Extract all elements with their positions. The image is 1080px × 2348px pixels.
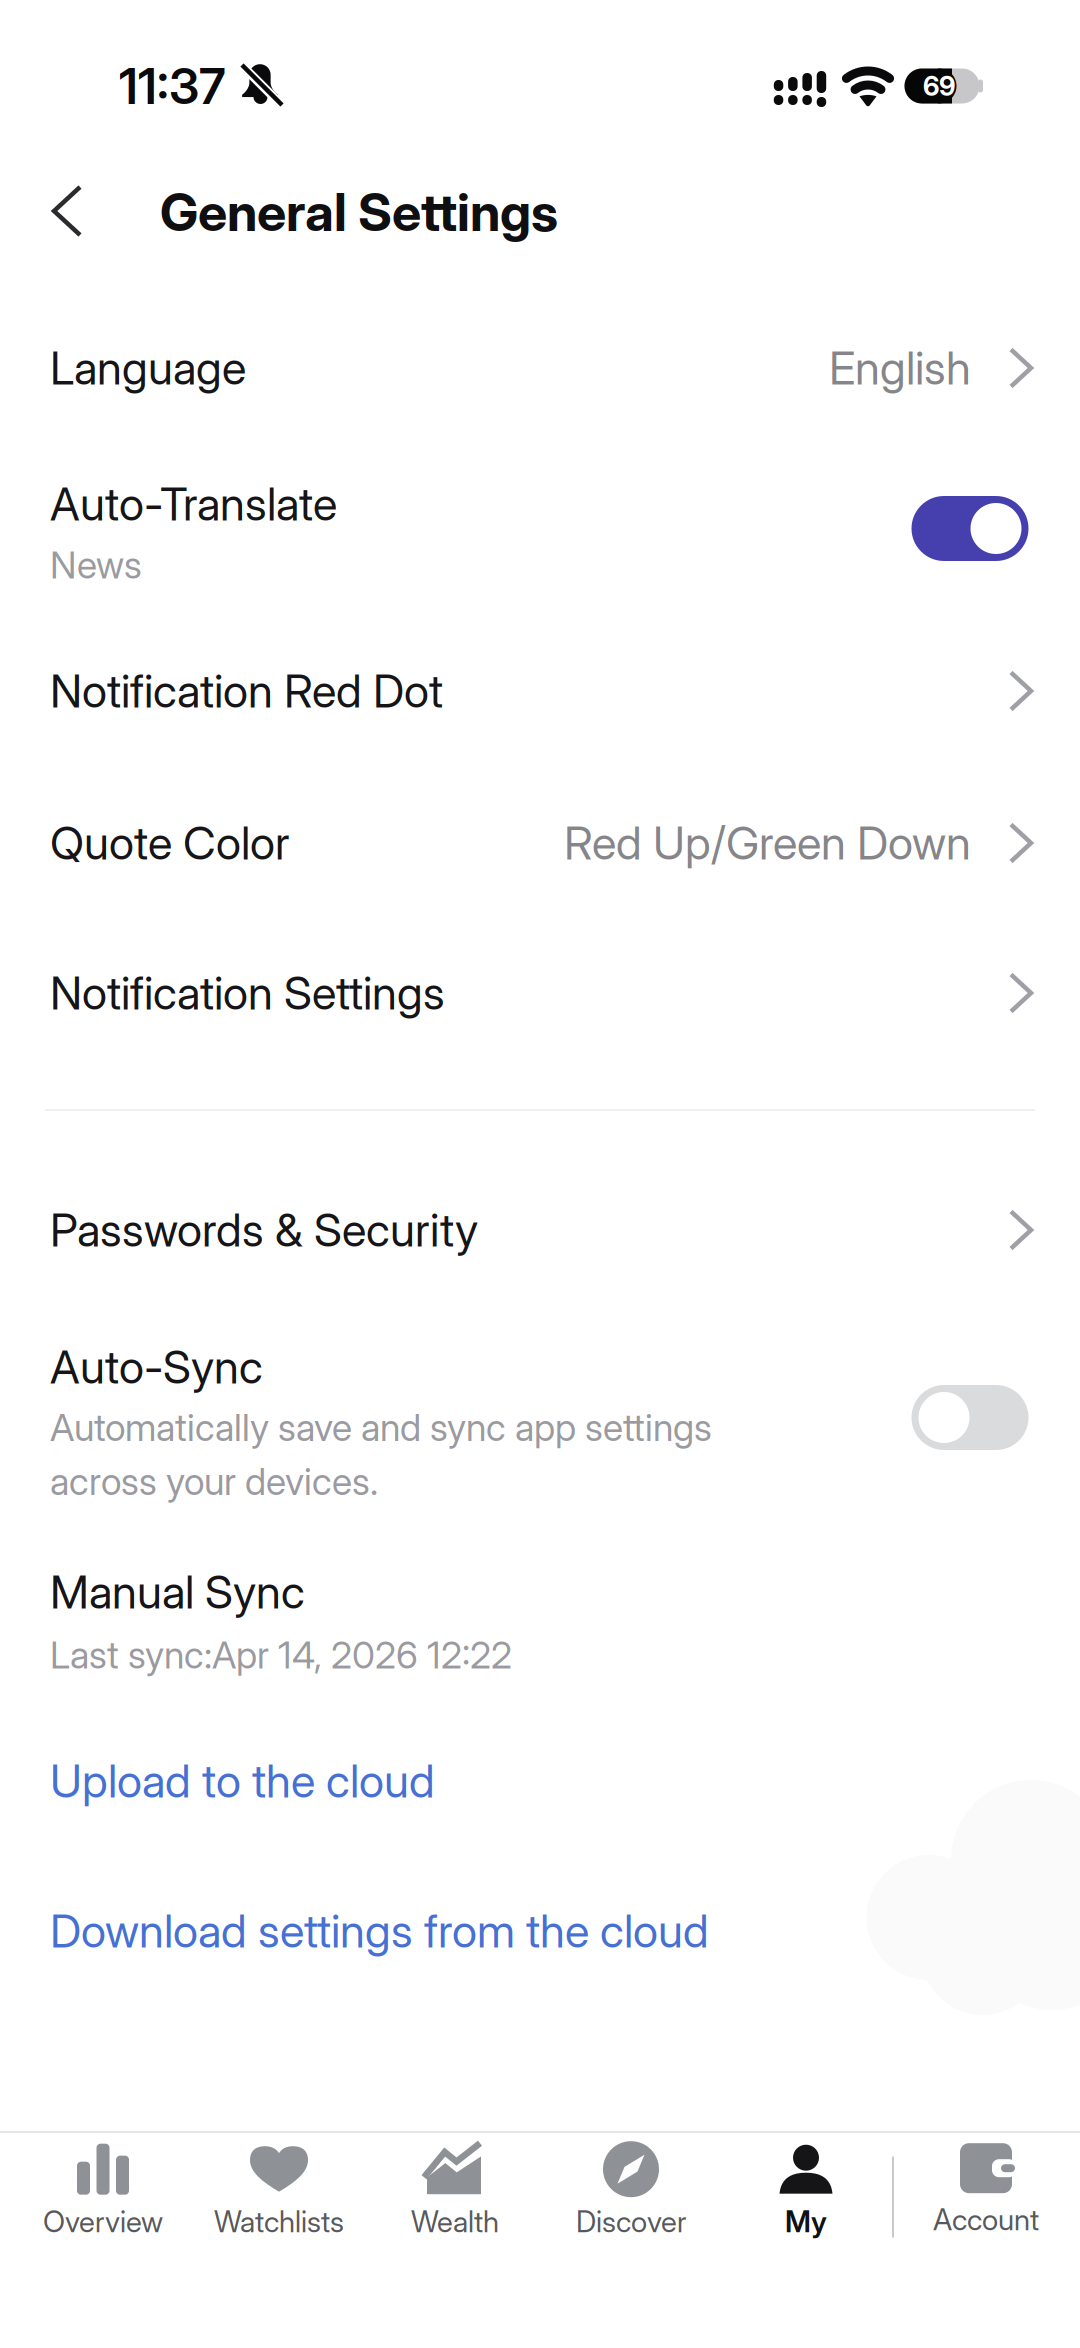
button[interactable]: Notification Red Dot — [0, 632, 1080, 750]
button[interactable]: Language — [0, 309, 1080, 427]
button[interactable]: Auto-Sync — [0, 1322, 1080, 1522]
staticText: Account — [933, 2202, 1039, 2237]
staticText: Notification Red Dot — [50, 664, 443, 718]
staticText: English — [829, 341, 971, 395]
staticText: Discover — [576, 2204, 686, 2239]
staticText: Automatically save and sync app settings… — [50, 1405, 712, 1504]
staticText: General Settings — [160, 181, 558, 243]
staticText: Watchlists — [214, 2204, 344, 2239]
button[interactable]: Notification Settings — [0, 934, 1080, 1052]
staticText: Manual Sync — [50, 1565, 305, 1619]
staticText: 11:37 — [119, 57, 226, 115]
staticText: Auto-Sync — [50, 1340, 263, 1394]
button[interactable]: Quote Color — [0, 784, 1080, 902]
staticText: Overview — [43, 2204, 163, 2239]
button[interactable]: Off — [911, 1385, 1028, 1450]
button[interactable]: Wealth — [367, 2141, 543, 2241]
button[interactable]: Passwords & Security — [0, 1171, 1080, 1289]
button[interactable]: Download settings from the cloud — [0, 1876, 1080, 1986]
staticText: Wealth — [411, 2204, 499, 2239]
staticText: News — [50, 543, 142, 587]
button[interactable]: Back — [38, 177, 96, 245]
staticText: 69 — [923, 70, 955, 102]
staticText: Auto-Translate — [50, 477, 337, 531]
staticText: Upload to the cloud — [50, 1754, 435, 1808]
staticText: Passwords & Security — [50, 1203, 478, 1257]
staticText: Quote Color — [50, 816, 290, 870]
staticText: My — [785, 2204, 827, 2239]
button[interactable]: Overview — [15, 2141, 191, 2241]
button[interactable]: Watchlists — [191, 2141, 367, 2241]
button[interactable]: Auto-Translate — [0, 447, 1080, 617]
staticText: Download settings from the cloud — [50, 1904, 709, 1958]
button[interactable]: My — [718, 2141, 894, 2241]
staticText: Last sync:Apr 14, 2026 12:22 — [50, 1633, 512, 1677]
staticText: Language — [50, 341, 246, 395]
button[interactable]: Upload to the cloud — [0, 1726, 1080, 1836]
staticText: Notification Settings — [50, 966, 445, 1020]
button[interactable]: On — [911, 496, 1028, 561]
button[interactable]: Manual Sync — [0, 1562, 1080, 1682]
button[interactable]: Account — [896, 2140, 1076, 2240]
button[interactable]: Discover — [543, 2141, 719, 2241]
staticText: Red Up/Green Down — [564, 816, 971, 870]
